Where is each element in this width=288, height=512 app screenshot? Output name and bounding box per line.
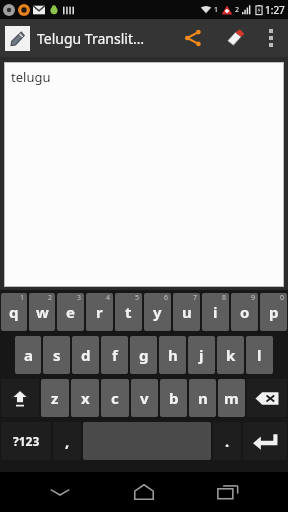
button[interactable]: i xyxy=(202,293,229,331)
button[interactable]: More options xyxy=(256,23,286,53)
button[interactable]: , xyxy=(53,422,81,460)
staticText: w xyxy=(36,302,49,322)
button[interactable]: Share xyxy=(172,19,214,57)
staticText: q xyxy=(9,302,19,322)
button[interactable]: x xyxy=(71,379,99,417)
button[interactable]: . xyxy=(213,422,241,460)
button[interactable]: Home xyxy=(120,472,168,512)
staticText: , xyxy=(65,431,70,451)
button[interactable]: p xyxy=(260,293,287,331)
button[interactable]: h xyxy=(159,336,186,374)
staticText: Telugu Translit… xyxy=(37,29,145,48)
staticText: 6 xyxy=(164,293,169,303)
staticText: r xyxy=(96,302,103,322)
staticText: 2 xyxy=(48,293,53,303)
staticText: telugu xyxy=(11,68,51,86)
button[interactable]: s xyxy=(43,336,70,374)
button[interactable]: e xyxy=(57,293,84,331)
button[interactable]: q xyxy=(1,293,27,331)
staticText: 9 xyxy=(251,293,256,303)
button[interactable]: d xyxy=(72,336,99,374)
staticText: 3 xyxy=(77,293,82,303)
staticText: a xyxy=(24,345,33,365)
button[interactable]: u xyxy=(173,293,200,331)
button[interactable]: t xyxy=(115,293,142,331)
button[interactable]: a xyxy=(15,336,41,374)
button[interactable]: w xyxy=(29,293,55,331)
button[interactable]: ?123 xyxy=(1,422,51,460)
staticText: z xyxy=(51,388,59,408)
button[interactable]: Backspace xyxy=(247,379,287,417)
staticText: u xyxy=(182,302,192,322)
staticText: . xyxy=(225,431,230,451)
staticText: y xyxy=(153,302,162,322)
staticText: o xyxy=(240,302,250,322)
staticText: k xyxy=(226,345,236,365)
button[interactable]: Shift xyxy=(1,379,39,417)
button[interactable]: telugu xyxy=(4,62,284,287)
staticText: b xyxy=(169,388,179,408)
staticText: p xyxy=(269,302,279,322)
staticText: 2 xyxy=(235,5,240,15)
button[interactable]: c xyxy=(101,379,129,417)
staticText: c xyxy=(111,388,119,408)
button[interactable]: y xyxy=(144,293,171,331)
staticText: 4 xyxy=(106,293,111,303)
button[interactable]: Enter xyxy=(243,422,287,460)
staticText: 0 xyxy=(280,293,285,303)
staticText: 7 xyxy=(193,293,198,303)
button[interactable]: b xyxy=(160,379,187,417)
button[interactable]: Hide keyboard xyxy=(36,472,84,512)
button[interactable]: f xyxy=(101,336,128,374)
button[interactable]: j xyxy=(188,336,215,374)
staticText: g xyxy=(139,345,149,365)
staticText: s xyxy=(53,345,61,365)
button[interactable]: Clear xyxy=(214,19,256,57)
staticText: v xyxy=(140,388,149,408)
button[interactable]: k xyxy=(217,336,244,374)
staticText: 1 xyxy=(20,293,25,303)
staticText: d xyxy=(81,345,91,365)
staticText: 1:27 xyxy=(265,3,285,17)
staticText: ?123 xyxy=(13,433,40,449)
staticText: n xyxy=(198,388,208,408)
staticText: f xyxy=(112,345,118,365)
button[interactable]: v xyxy=(131,379,158,417)
button[interactable]: r xyxy=(86,293,113,331)
staticText: i xyxy=(213,302,218,322)
button[interactable]: Recent apps xyxy=(204,472,252,512)
button[interactable]: z xyxy=(41,379,69,417)
button[interactable]: g xyxy=(130,336,157,374)
staticText: 8 xyxy=(222,293,227,303)
staticText: x xyxy=(81,388,90,408)
button[interactable]: n xyxy=(189,379,216,417)
staticText: 5 xyxy=(135,293,140,303)
staticText: e xyxy=(66,302,75,322)
staticText: h xyxy=(168,345,178,365)
button[interactable]: m xyxy=(218,379,245,417)
button[interactable] xyxy=(5,26,30,51)
staticText: l xyxy=(257,345,262,365)
button[interactable]: l xyxy=(246,336,273,374)
button[interactable]: o xyxy=(231,293,258,331)
staticText: m xyxy=(224,388,239,408)
staticText: t xyxy=(125,302,132,322)
staticText: 1 xyxy=(214,5,219,15)
staticText: j xyxy=(199,345,204,365)
